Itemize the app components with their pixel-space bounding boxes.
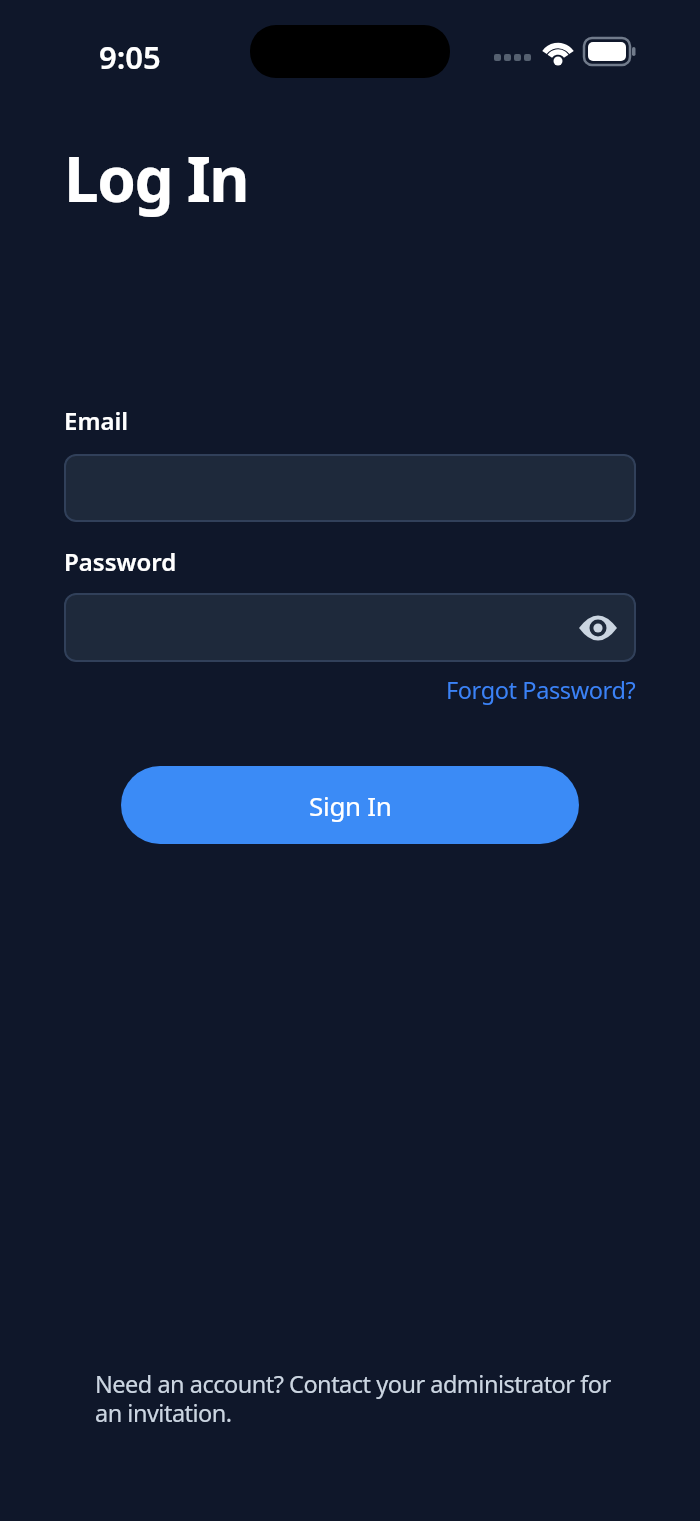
staticText: Email <box>64 404 129 437</box>
button[interactable] <box>578 608 618 648</box>
staticText: Sign In <box>309 788 392 823</box>
staticText: 9:05 <box>99 36 161 78</box>
button[interactable]: Sign In <box>121 766 579 844</box>
button[interactable] <box>64 593 636 662</box>
staticText: Need an account? Contact your administra… <box>95 1368 611 1429</box>
button[interactable] <box>64 454 636 522</box>
button[interactable]: Forgot Password? <box>446 674 636 706</box>
staticText: Forgot Password? <box>446 674 636 706</box>
staticText: Log In <box>64 136 249 220</box>
staticText: Password <box>64 545 177 578</box>
